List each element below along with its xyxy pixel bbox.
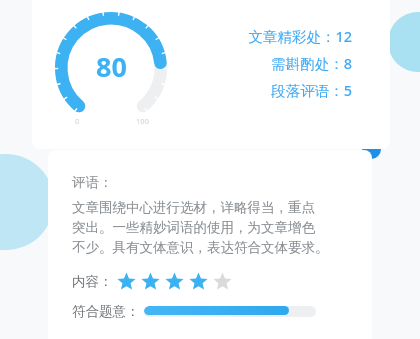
staticText: 100 bbox=[136, 116, 149, 126]
staticText: 评语： bbox=[72, 174, 113, 191]
button[interactable]: 符合题意： bbox=[72, 303, 354, 320]
button[interactable]: 内容： bbox=[72, 272, 354, 291]
button[interactable]: 80 bbox=[32, 0, 390, 149]
other: Rating star bbox=[117, 272, 136, 291]
staticText: 不少。具有文体意识，表达符合文体要求。 bbox=[72, 239, 329, 256]
other: Rating star bbox=[141, 272, 160, 291]
staticText: 文章精彩处：12 bbox=[248, 26, 352, 46]
other: Rating star bbox=[189, 272, 208, 291]
staticText: 内容： bbox=[72, 273, 113, 290]
staticText: 突出。一些精妙词语的使用，为文章增色 bbox=[72, 219, 315, 236]
staticText: 符合题意： bbox=[72, 303, 140, 320]
button[interactable]: 评语： bbox=[48, 150, 372, 339]
staticText: 需斟酌处：8 bbox=[271, 53, 352, 73]
staticText: 文章围绕中心进行选材，详略得当，重点 bbox=[72, 199, 315, 216]
other: Rating star bbox=[213, 272, 232, 291]
staticText: 0 bbox=[75, 116, 80, 126]
staticText: 80 bbox=[96, 48, 127, 85]
staticText: 段落评语：5 bbox=[271, 80, 352, 100]
other: Rating star bbox=[165, 272, 184, 291]
